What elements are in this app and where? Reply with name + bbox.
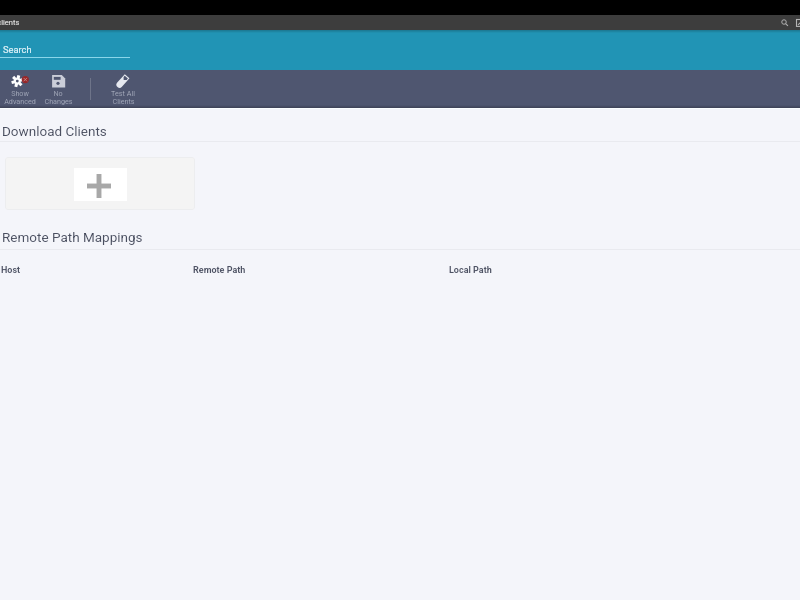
button[interactable]: Search [0, 38, 130, 60]
staticText: Show [11, 89, 29, 97]
staticText: Local Path [449, 265, 492, 276]
staticText: Search [3, 44, 32, 55]
button[interactable] [5, 157, 195, 210]
button[interactable]: Show [0, 70, 40, 108]
staticText: Download Clients [2, 123, 107, 139]
staticText: No [53, 89, 63, 97]
staticText: Test All [111, 89, 135, 97]
button[interactable]: Tabs [793, 15, 800, 30]
button[interactable]: Test All [103, 70, 143, 108]
staticText: Host [1, 265, 21, 276]
staticText: Clients [112, 97, 135, 105]
staticText: Changes [44, 97, 73, 105]
staticText: Remote Path Mappings [2, 229, 143, 245]
button[interactable]: No [38, 70, 78, 108]
button[interactable]: Find in page [776, 15, 792, 30]
staticText: Remote Path [193, 265, 246, 276]
staticText: Advanced [4, 97, 36, 105]
staticText: dclients [0, 18, 20, 27]
